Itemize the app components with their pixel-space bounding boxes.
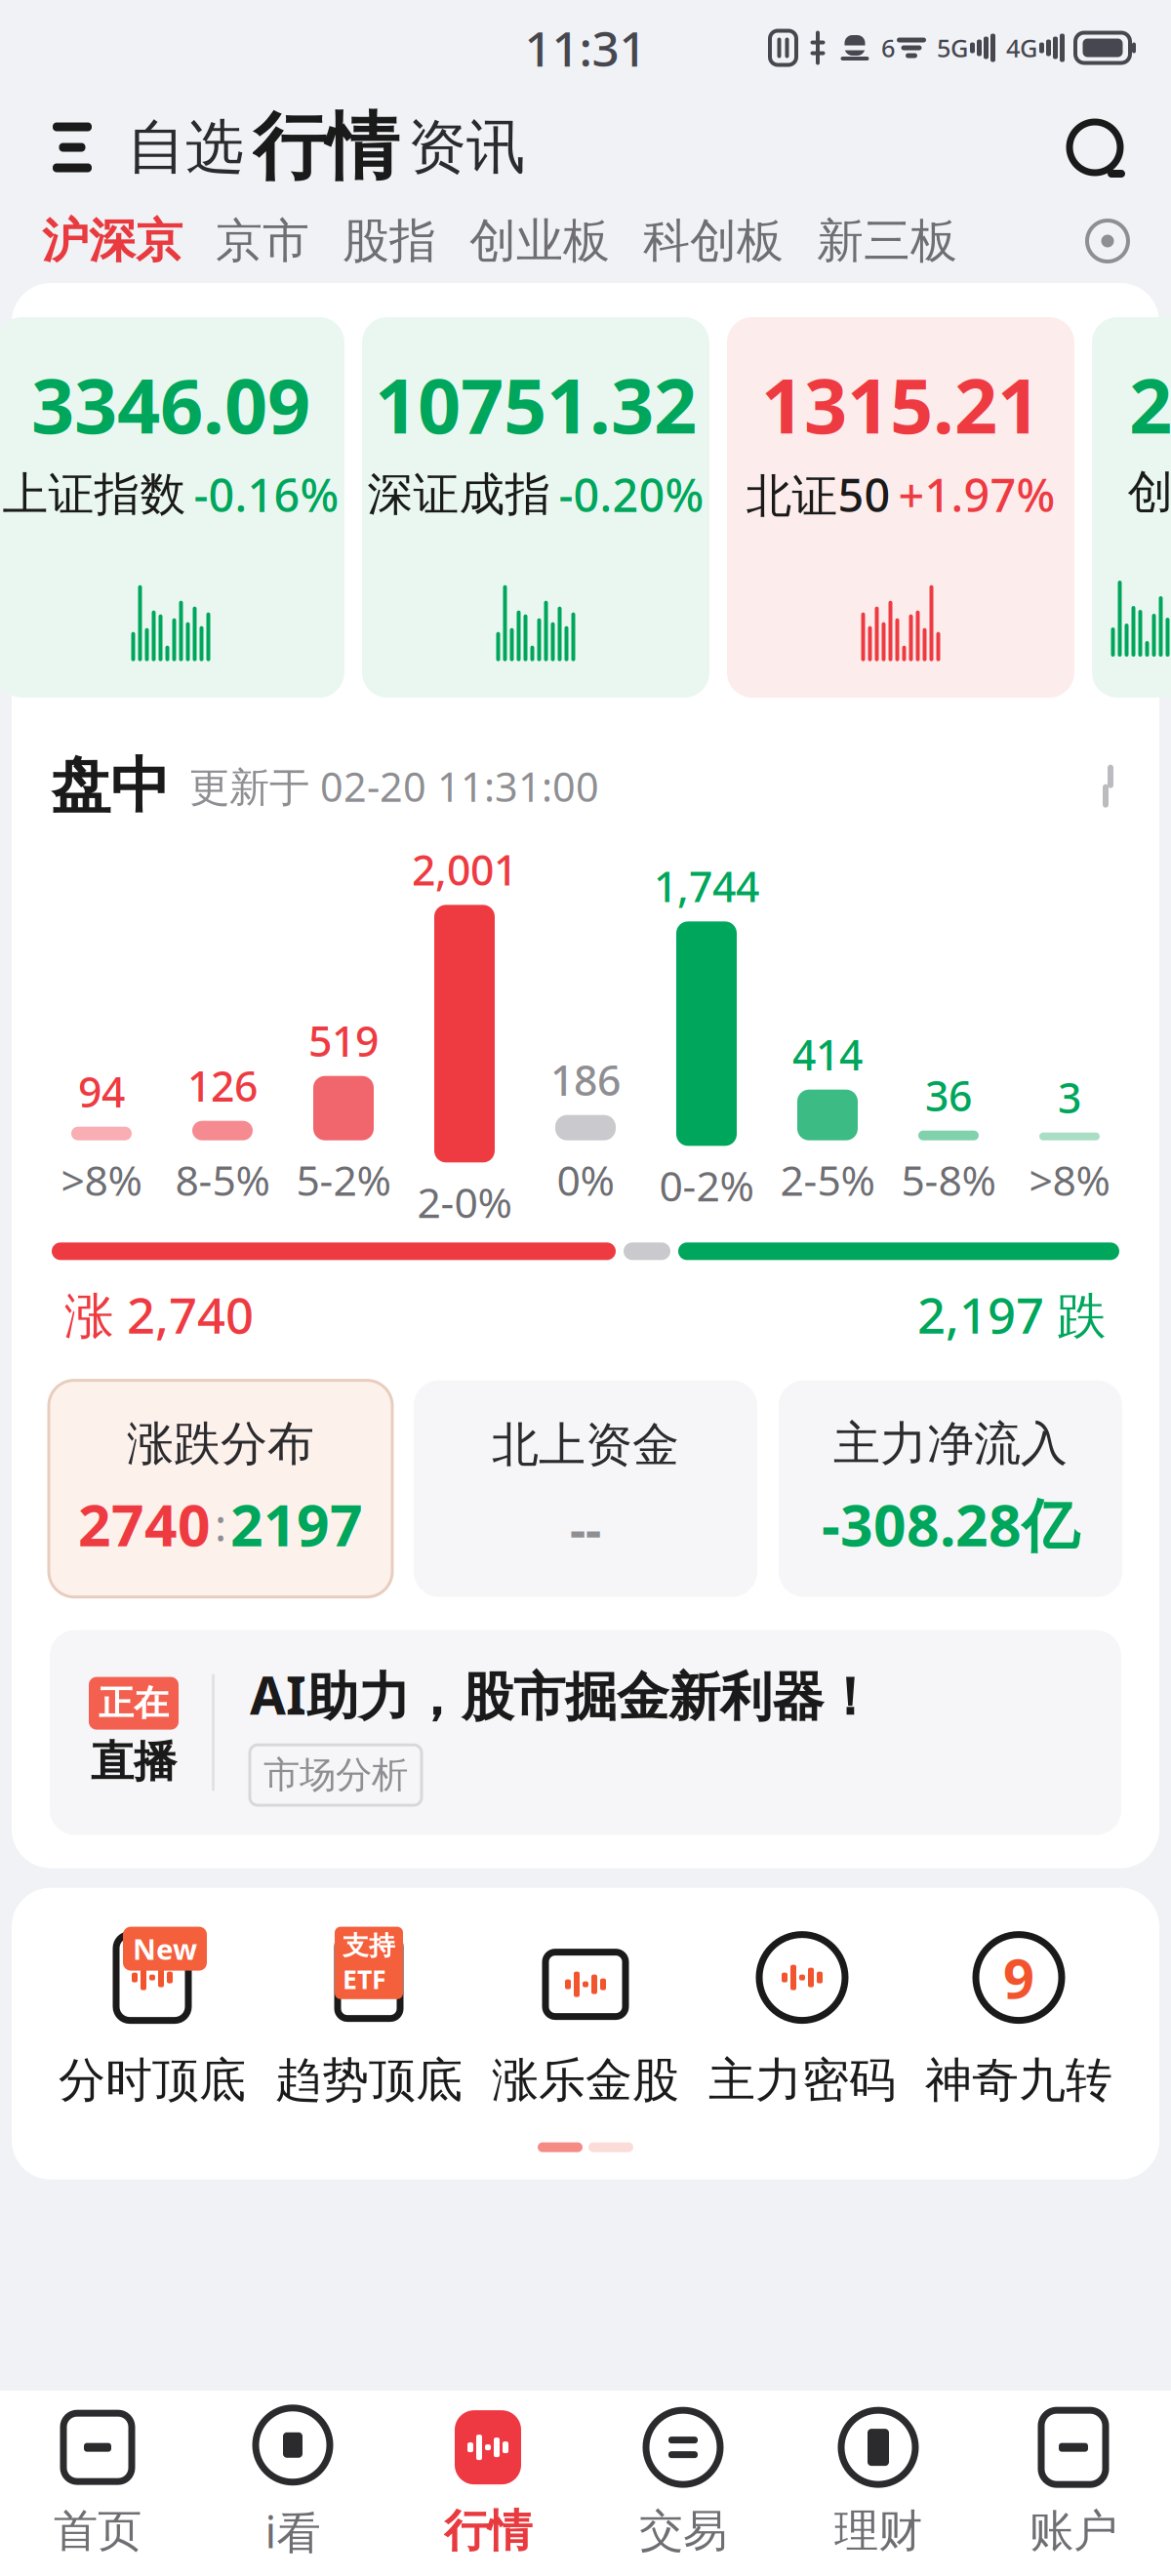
staticText: : <box>215 1495 226 1554</box>
staticText: 京市 <box>216 212 309 270</box>
staticText: 交易 <box>639 2504 727 2558</box>
staticText: 126 <box>187 1058 258 1113</box>
staticText: 36 <box>925 1067 972 1123</box>
button[interactable]: 账户 <box>976 2393 1171 2574</box>
button[interactable]: 主力净流入 <box>779 1380 1122 1597</box>
staticText: >8% <box>1029 1152 1110 1207</box>
staticText: 2740 <box>78 1486 211 1562</box>
button[interactable]: 行情 <box>252 97 400 198</box>
staticText: 盘中 <box>51 749 170 823</box>
staticText: 186 <box>550 1052 621 1107</box>
staticText: 正在 <box>99 1682 169 1725</box>
button[interactable]: 自选 <box>119 97 252 198</box>
button[interactable]: 交易 <box>585 2393 781 2574</box>
button[interactable]: 主力密码 <box>694 1927 910 2109</box>
staticText: 6 <box>881 31 895 64</box>
staticText: 沪深京 <box>42 212 182 270</box>
staticText: 分时顶底 <box>59 2052 246 2109</box>
staticText: 2,001 <box>412 842 517 897</box>
staticText: New <box>133 1930 197 1968</box>
staticText: 3346.09 <box>31 354 310 454</box>
button[interactable]: 科创板 <box>626 200 800 282</box>
staticText: 支持ETF <box>343 1930 395 1996</box>
staticText: 涨乐金股 <box>492 2052 679 2109</box>
staticText: 资讯 <box>408 111 525 183</box>
staticText: 4G <box>1006 31 1037 64</box>
button[interactable]: 首页 <box>0 2393 195 2574</box>
staticText: 北上资金 <box>492 1416 679 1474</box>
staticText: 更新于 02-20 11:31:00 <box>189 759 599 813</box>
button[interactable]: 京市 <box>199 200 326 282</box>
staticText: 2-5% <box>780 1152 875 1207</box>
staticText: 新三板 <box>817 212 957 270</box>
staticText: 直播 <box>91 1735 177 1788</box>
staticText: 账户 <box>1030 2504 1117 2558</box>
button[interactable]: 盘中 <box>12 749 1159 823</box>
button[interactable]: 3346.09 <box>0 317 344 698</box>
staticText: 行情 <box>253 103 399 192</box>
staticText: -308.28亿 <box>822 1486 1079 1562</box>
staticText: -0.20% <box>559 464 704 525</box>
staticText: 涨跌分布 <box>127 1415 314 1473</box>
staticText: 趋势顶底 <box>275 2052 463 2109</box>
staticText: i看 <box>265 2502 321 2561</box>
staticText: 519 <box>308 1013 379 1068</box>
staticText: 11:31 <box>525 16 646 80</box>
staticText: 0-2% <box>659 1158 754 1213</box>
staticText: 8-5% <box>175 1152 270 1207</box>
staticText: 理财 <box>834 2504 922 2558</box>
staticText: 10751.32 <box>375 354 697 454</box>
button[interactable]: 9 <box>910 1927 1127 2109</box>
staticText: 市场分析 <box>263 1753 408 1797</box>
staticText: 行情 <box>444 2504 532 2558</box>
button[interactable]: 北上资金 <box>414 1380 757 1597</box>
staticText: 主力净流入 <box>833 1415 1068 1473</box>
staticText: AI助力，股市掘金新利器！ <box>250 1660 875 1729</box>
staticText: 主力密码 <box>708 2052 896 2109</box>
staticText: 94 <box>78 1064 125 1119</box>
staticText: 科创板 <box>643 212 784 270</box>
button[interactable]: 1315.21 <box>727 317 1074 698</box>
staticText: 2,197 跌 <box>917 1281 1107 1347</box>
staticText: -- <box>570 1495 601 1561</box>
button[interactable]: 沪深京 <box>25 200 199 282</box>
staticText: 2197 <box>230 1486 363 1562</box>
button[interactable]: 创业板 <box>453 200 626 282</box>
button[interactable]: Customize <box>1070 200 1146 282</box>
button[interactable]: 资讯 <box>400 97 533 198</box>
staticText: 5G <box>937 31 968 64</box>
button[interactable]: New <box>44 1927 261 2109</box>
staticText: 2-0% <box>417 1174 512 1229</box>
button[interactable]: 10751.32 <box>362 317 709 698</box>
staticText: >8% <box>61 1152 142 1207</box>
button[interactable]: 正在 <box>50 1630 1121 1835</box>
staticText: 1,744 <box>654 858 759 914</box>
staticText: 0% <box>557 1152 614 1207</box>
staticText: 5-8% <box>901 1152 996 1207</box>
staticText: 3 <box>1058 1069 1081 1125</box>
staticText: 414 <box>792 1026 863 1082</box>
button[interactable]: 股指 <box>326 200 453 282</box>
button[interactable]: Search <box>1044 97 1146 198</box>
staticText: 深证成指 <box>367 466 551 522</box>
staticText: 9 <box>1003 1941 1034 2014</box>
staticText: 自选 <box>127 111 244 183</box>
staticText: 上证指数 <box>2 466 186 522</box>
staticText: 创 <box>1128 464 1171 520</box>
button[interactable]: 2 <box>1092 317 1171 698</box>
button[interactable]: 理财 <box>781 2393 976 2574</box>
staticText: 2 <box>1129 354 1171 454</box>
staticText: 5-2% <box>296 1152 391 1207</box>
button[interactable]: 行情 <box>390 2393 585 2574</box>
staticText: 北证50 <box>746 464 890 525</box>
staticText: 股指 <box>343 212 436 270</box>
button[interactable]: 涨跌分布 <box>49 1380 392 1597</box>
staticText: 首页 <box>54 2504 141 2558</box>
button[interactable]: i看 <box>195 2393 390 2574</box>
staticText: 1315.21 <box>761 354 1040 454</box>
button[interactable]: 涨乐金股 <box>477 1927 694 2109</box>
button[interactable]: Menu <box>25 97 119 198</box>
button[interactable]: 支持ETF <box>261 1927 477 2109</box>
staticText: 涨 2,740 <box>64 1281 254 1347</box>
button[interactable]: 新三板 <box>800 200 974 282</box>
